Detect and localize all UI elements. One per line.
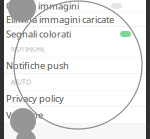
staticText: Elimina immagini caricate	[6, 13, 114, 26]
button[interactable]: Elimina immagini caricate	[0, 12, 150, 26]
staticText: Notifiche push	[6, 59, 69, 72]
button[interactable]: Versione	[0, 107, 150, 123]
staticText: NOTIFICHE	[11, 45, 45, 53]
staticText: AIUTO	[11, 78, 31, 86]
button[interactable]: Qualità immagini	[0, 0, 150, 12]
staticText: Versione	[6, 109, 43, 121]
staticText: Segnali colorati	[6, 28, 71, 40]
button[interactable]: Notifiche push	[0, 57, 150, 73]
staticText: Qualità immagini	[6, 0, 79, 12]
button[interactable]: Privacy policy	[0, 90, 150, 106]
staticText: Privacy policy	[6, 92, 64, 105]
button[interactable]: Segnali colorati	[0, 27, 150, 41]
